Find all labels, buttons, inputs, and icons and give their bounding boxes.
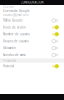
staticText: Cuenta de Google: [3, 9, 30, 13]
staticText: Sonidos de aviso: [3, 53, 26, 57]
staticText: usuario@gmail.com: [3, 13, 28, 17]
button[interactable]: Inicio de sesión: [0, 24, 64, 31]
button[interactable]: Sonidos de aviso: [0, 51, 64, 58]
button[interactable]: Tráfico Google: [0, 17, 64, 24]
staticText: Cuenta: [3, 5, 13, 9]
staticText: Privacidad: [3, 59, 16, 62]
staticText: Grupos de usuario: [3, 39, 29, 43]
button[interactable]: Ubicación: [0, 45, 64, 51]
staticText: CONFIGURACIÓN: [20, 1, 43, 4]
staticText: Inicio de sesión: [3, 26, 26, 29]
button[interactable]: Nombre de usuario: [0, 31, 64, 38]
button[interactable]: Cuenta de Google: [0, 9, 64, 17]
button[interactable]: Historial: [0, 63, 64, 70]
button[interactable]: Grupos de usuario: [0, 38, 64, 45]
staticText: Historial: [3, 64, 14, 68]
staticText: Nombre de usuario: [3, 32, 30, 36]
staticText: Ubicación: [3, 46, 16, 50]
staticText: Tráfico Google: [3, 19, 23, 22]
